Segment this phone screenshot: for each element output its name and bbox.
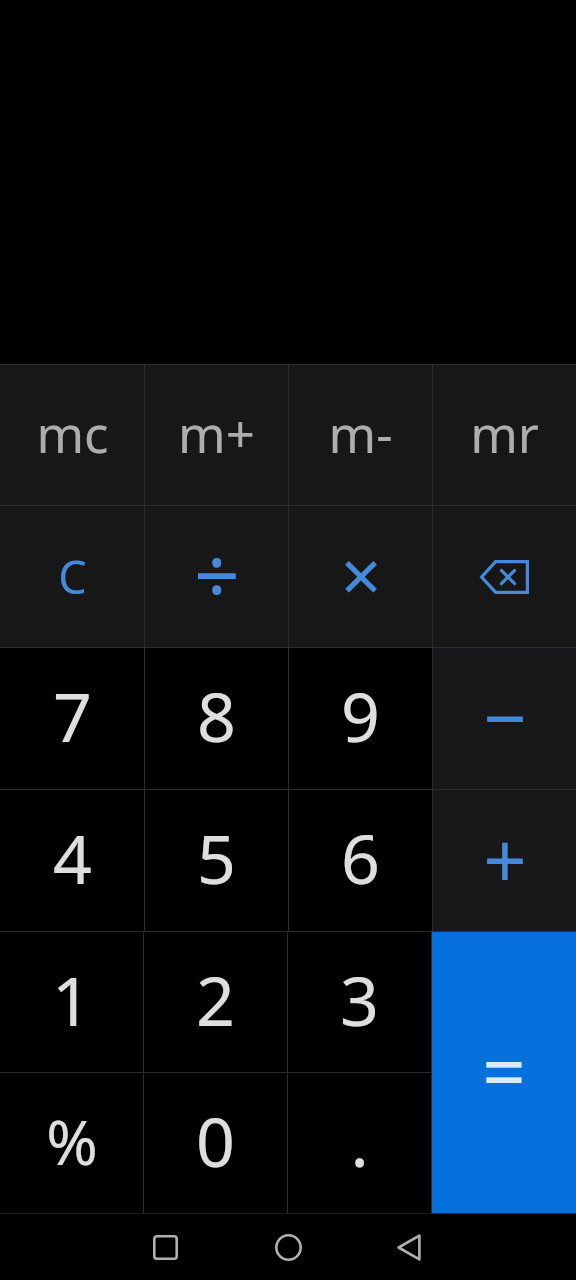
staticText: 4: [53, 811, 92, 904]
button[interactable]: Plus: [433, 790, 576, 931]
button[interactable]: Decimal point: [288, 1073, 431, 1213]
button[interactable]: 7: [0, 648, 144, 789]
button[interactable]: Multiply: [289, 506, 432, 647]
staticText: mr: [470, 398, 539, 467]
button[interactable]: 8: [145, 648, 288, 789]
staticText: %: [46, 1099, 98, 1183]
staticText: m-: [328, 398, 393, 467]
staticText: 0: [196, 1094, 235, 1187]
staticText: −: [483, 665, 527, 769]
button[interactable]: 6: [289, 790, 432, 931]
button[interactable]: Back: [385, 1223, 433, 1271]
staticText: 2: [196, 953, 235, 1046]
staticText: ×: [340, 525, 382, 623]
button[interactable]: Memory clear: [0, 365, 144, 505]
button[interactable]: Backspace: [433, 506, 576, 647]
staticText: 1: [52, 953, 91, 1046]
button[interactable]: Memory recall: [433, 365, 576, 505]
button[interactable]: 9: [289, 648, 432, 789]
staticText: 7: [53, 669, 92, 762]
staticText: 3: [340, 953, 379, 1046]
staticText: 5: [197, 811, 236, 904]
button[interactable]: 1: [0, 932, 143, 1072]
button[interactable]: 2: [144, 932, 287, 1072]
button[interactable]: Memory subtract: [289, 365, 432, 505]
button[interactable]: 4: [0, 790, 144, 931]
button[interactable]: Minus: [433, 648, 576, 789]
staticText: .: [350, 1094, 369, 1187]
button[interactable]: Equals: [432, 932, 576, 1213]
button[interactable]: Memory add: [145, 365, 288, 505]
staticText: C: [58, 546, 87, 607]
button[interactable]: Percent: [0, 1073, 143, 1213]
staticText: 9: [341, 669, 380, 762]
button[interactable]: Divide: [145, 506, 288, 647]
button[interactable]: 3: [288, 932, 431, 1072]
staticText: mc: [36, 398, 109, 467]
staticText: +: [483, 808, 527, 912]
button[interactable]: Recent apps: [141, 1223, 189, 1271]
button[interactable]: Home: [264, 1223, 312, 1271]
button[interactable]: 5: [145, 790, 288, 931]
staticText: m+: [178, 398, 255, 467]
staticText: ÷: [194, 519, 240, 628]
staticText: 8: [197, 669, 236, 762]
staticText: 6: [341, 811, 380, 904]
button[interactable]: Clear: [0, 506, 144, 647]
button[interactable]: 0: [144, 1073, 287, 1213]
staticText: =: [482, 1019, 526, 1123]
